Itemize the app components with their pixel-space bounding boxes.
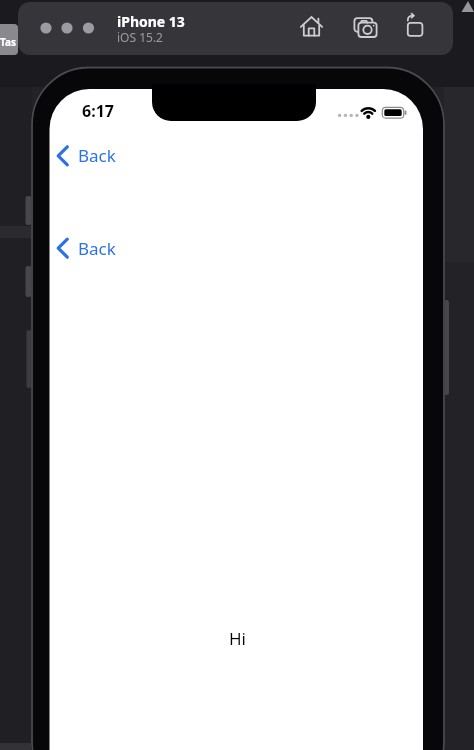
button[interactable] (403, 14, 427, 40)
staticText: 6:17 (82, 100, 114, 117)
button[interactable]: Back (53, 234, 119, 262)
staticText: iPhone 13 (117, 12, 185, 31)
staticText: Back (78, 144, 116, 167)
staticText: iOS 15.2 (117, 29, 163, 45)
button[interactable] (351, 14, 379, 40)
staticText: Back (78, 237, 116, 260)
staticText: Tas (0, 35, 16, 49)
button[interactable] (299, 14, 325, 40)
staticText: Hi (229, 627, 246, 650)
button[interactable]: Back (53, 141, 119, 169)
